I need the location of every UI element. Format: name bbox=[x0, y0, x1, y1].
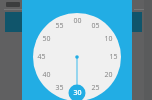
staticText: 00 bbox=[73, 16, 82, 26]
button[interactable]: 40 bbox=[39, 70, 53, 80]
staticText: 20 bbox=[104, 70, 113, 80]
staticText: 45 bbox=[37, 52, 46, 62]
staticText: 40 bbox=[42, 70, 51, 80]
staticText: 35 bbox=[55, 83, 64, 93]
button[interactable]: 20 bbox=[101, 70, 115, 80]
button[interactable]: 25 bbox=[88, 83, 102, 93]
staticText: 10 bbox=[104, 34, 113, 44]
button[interactable]: 30 bbox=[70, 88, 84, 98]
button[interactable]: 05 bbox=[88, 21, 102, 31]
button[interactable]: 00 bbox=[70, 16, 84, 26]
button[interactable] bbox=[22, 0, 132, 100]
button[interactable]: 10 bbox=[101, 34, 115, 44]
staticText: 25 bbox=[91, 83, 100, 93]
staticText: 30 bbox=[73, 88, 82, 98]
staticText: 15 bbox=[109, 52, 118, 62]
staticText: 55 bbox=[55, 21, 64, 31]
button[interactable]: 55 bbox=[52, 21, 66, 31]
staticText: 05 bbox=[91, 21, 100, 31]
button[interactable]: 50 bbox=[39, 34, 53, 44]
button[interactable]: 15 bbox=[106, 52, 120, 62]
button[interactable]: 45 bbox=[34, 52, 48, 62]
staticText: 50 bbox=[42, 34, 51, 44]
button[interactable]: Minute dial bbox=[22, 8, 132, 100]
button[interactable]: 35 bbox=[52, 83, 66, 93]
